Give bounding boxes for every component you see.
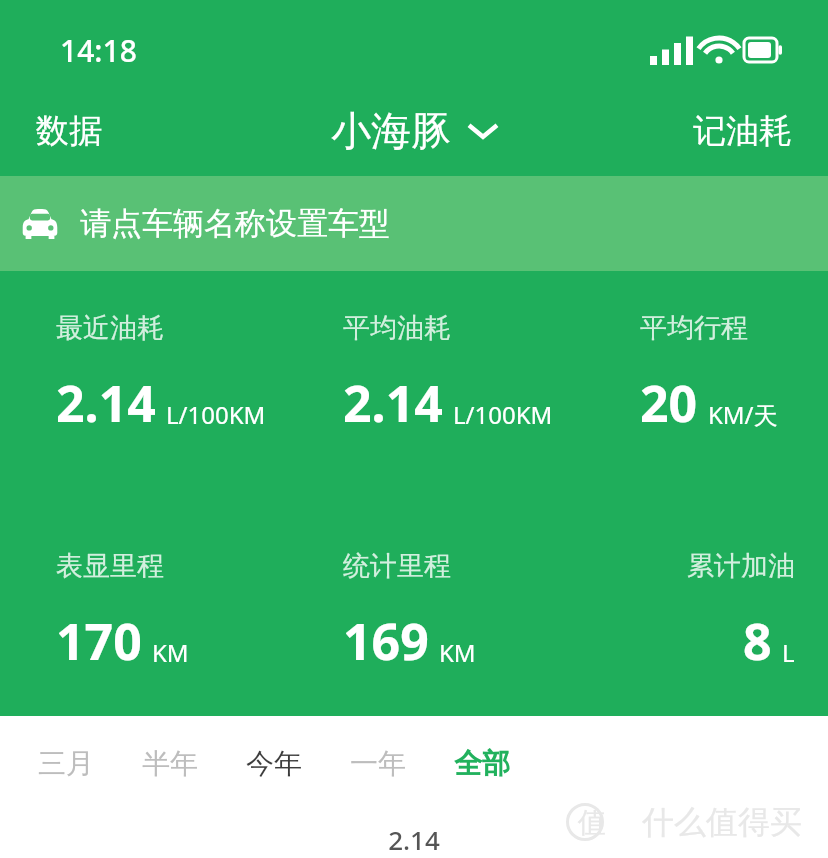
button[interactable]: 最近油耗 (56, 311, 266, 437)
staticText: 最近油耗 (56, 311, 164, 345)
staticText: 请点车辆名称设置车型 (80, 204, 390, 243)
button[interactable]: 累计加油 (687, 549, 795, 675)
button[interactable]: 表显里程 (56, 549, 189, 675)
staticText: 2.14 (343, 369, 443, 437)
staticText: 14:18 (60, 30, 137, 71)
staticText: 表显里程 (56, 549, 164, 583)
button[interactable]: 全部 (430, 732, 534, 795)
button[interactable]: 今年 (222, 732, 326, 795)
staticText: 三月 (38, 746, 94, 781)
staticText: 值 (578, 805, 606, 840)
staticText: 记油耗 (693, 110, 792, 152)
staticText: 170 (56, 607, 142, 675)
staticText: L/100KM (453, 398, 553, 431)
staticText: 半年 (142, 746, 198, 781)
button[interactable]: 小海豚 (317, 100, 511, 162)
button[interactable]: 一年 (326, 732, 430, 795)
staticText: L (782, 636, 795, 669)
staticText: 累计加油 (687, 549, 795, 583)
button[interactable]: 数据 (22, 102, 116, 160)
staticText: 平均行程 (640, 311, 748, 345)
button[interactable]: 三月 (14, 732, 118, 795)
staticText: 小海豚 (331, 106, 451, 156)
staticText: 什么值得买 (642, 802, 802, 842)
staticText: 平均油耗 (343, 311, 451, 345)
staticText: 统计里程 (343, 549, 451, 583)
button[interactable]: 平均行程 (640, 311, 778, 437)
button[interactable]: 记油耗 (679, 102, 806, 160)
staticText: KM (439, 636, 476, 669)
button[interactable]: 统计里程 (343, 549, 476, 675)
staticText: 169 (343, 607, 429, 675)
staticText: KM/天 (708, 398, 778, 431)
staticText: L/100KM (166, 398, 266, 431)
staticText: 全部 (454, 746, 510, 781)
button[interactable]: 半年 (118, 732, 222, 795)
staticText: 一年 (350, 746, 406, 781)
staticText: 数据 (36, 110, 102, 152)
staticText: 今年 (246, 746, 302, 781)
button[interactable]: 请点车辆名称设置车型 (0, 176, 828, 271)
button[interactable]: 平均油耗 (343, 311, 553, 437)
staticText: 2.14 (388, 822, 440, 857)
staticText: KM (152, 636, 189, 669)
staticText: 2.14 (56, 369, 156, 437)
staticText: 20 (640, 369, 698, 437)
staticText: 8 (743, 607, 772, 675)
